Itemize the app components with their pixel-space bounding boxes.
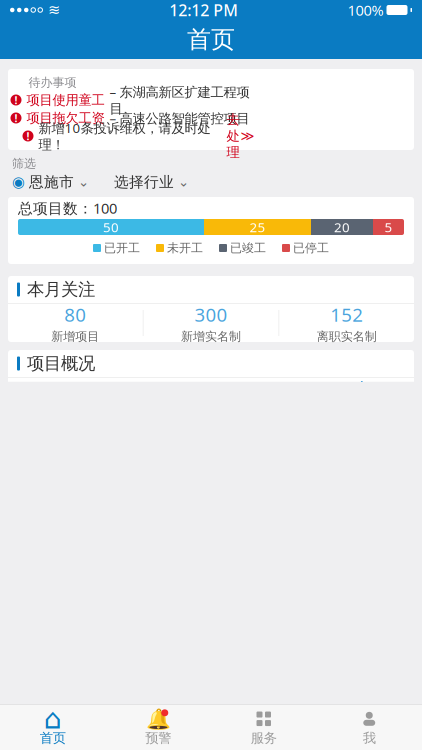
staticText: – 东湖高新区扩建工程项目 [109, 83, 249, 117]
button[interactable]: 我 [316, 706, 422, 749]
staticText: ≫ [240, 128, 254, 143]
staticText: 未开工 [167, 241, 203, 255]
staticText: 项目概况 [27, 353, 95, 374]
staticText: 已竣工 [230, 241, 266, 255]
button[interactable]: 服务 [211, 706, 316, 749]
staticText: 152 [330, 302, 363, 327]
button[interactable]: ⌂ [0, 706, 105, 749]
staticText: 80 [64, 376, 86, 401]
staticText: 首页 [40, 730, 66, 746]
button[interactable]: ! [8, 109, 422, 127]
staticText: 300 [194, 302, 227, 327]
staticText: 已开工 [104, 241, 140, 255]
staticText: – 高速公路智能管控项目 [109, 109, 249, 127]
staticText: 服务 [251, 730, 277, 746]
button[interactable]: 🔔 [105, 706, 211, 749]
staticText: 新增项目 [51, 329, 99, 344]
staticText: 待办事项 [28, 75, 76, 90]
staticText: ! [26, 129, 29, 143]
staticText: 25 [249, 218, 265, 236]
staticText: 离职实名制 [317, 329, 377, 344]
button[interactable]: ! [8, 91, 422, 109]
staticText: ◉ [12, 174, 25, 190]
staticText: 选择行业 [114, 173, 174, 191]
staticText: 3.56亿 [318, 376, 375, 401]
staticText: ⌄ [78, 174, 89, 189]
staticText: ⌂ [44, 703, 62, 735]
staticText: 80 [64, 302, 86, 327]
staticText: 50 [103, 218, 119, 236]
staticText: 项目使用童工 [26, 92, 104, 108]
staticText: 12:12 PM [169, 0, 238, 21]
staticText: ≋ [48, 2, 60, 18]
staticText: 本月关注 [27, 279, 95, 300]
staticText: 恩施市 [29, 173, 74, 191]
staticText: 首页 [187, 25, 235, 54]
staticText: 20 [334, 218, 350, 236]
staticText: ! [14, 111, 17, 125]
staticText: ⌄ [178, 174, 189, 189]
staticText: 新增实名制 [181, 329, 241, 344]
staticText: 🔔 [146, 707, 171, 730]
button[interactable]: ! [13, 127, 422, 145]
button[interactable]: 选择行业 [114, 170, 189, 194]
staticText: 总项目数：100 [18, 198, 117, 218]
staticText: 新增10条投诉维权，请及时处理！ [38, 119, 210, 153]
staticText: 5 [384, 218, 392, 236]
staticText: 项目拖欠工资 [26, 110, 104, 126]
staticText: 我 [363, 730, 376, 746]
staticText: 已停工 [293, 241, 329, 255]
staticText: 80 [200, 376, 222, 401]
button[interactable]: ◉ [12, 170, 89, 194]
staticText: 筛选 [12, 156, 36, 171]
staticText: 100% [347, 0, 383, 20]
staticText: ! [14, 93, 17, 107]
staticText: 预警 [145, 730, 171, 746]
staticText: 去处理 [226, 111, 239, 160]
